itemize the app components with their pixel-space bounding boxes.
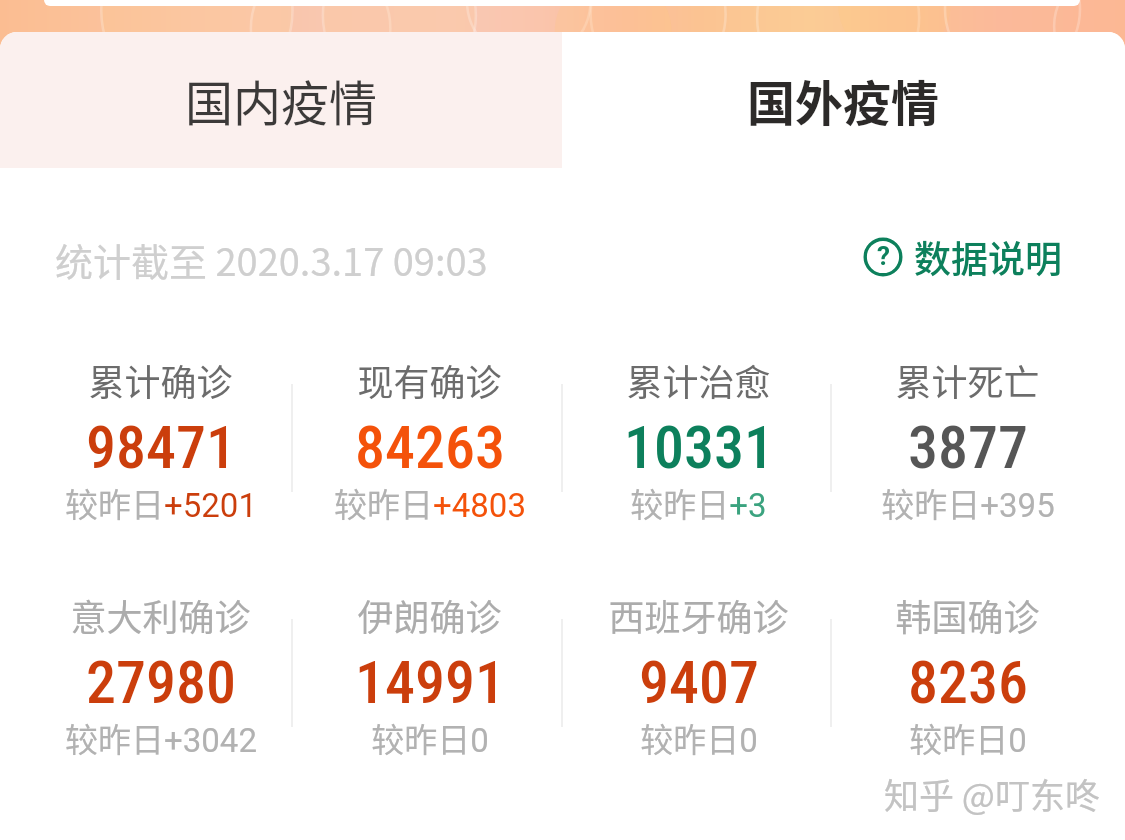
staticText: 8236	[908, 647, 1028, 717]
staticText: 伊朗确诊	[357, 589, 502, 641]
staticText: 较昨日0	[909, 714, 1027, 762]
staticText: ?	[877, 241, 890, 271]
button[interactable]: 韩国确诊	[833, 589, 1102, 765]
staticText: 27980	[86, 647, 236, 717]
staticText: 较昨日+3042	[65, 714, 257, 762]
button[interactable]: 国内疫情	[0, 32, 562, 168]
staticText: 国外疫情	[747, 65, 940, 135]
staticText: 知乎 @叮东咚	[884, 768, 1100, 819]
staticText: 较昨日0	[640, 714, 758, 762]
staticText: 3877	[908, 412, 1028, 482]
button[interactable]: 累计死亡	[833, 354, 1102, 530]
staticText: 意大利确诊	[70, 589, 251, 641]
staticText: 现有确诊	[357, 354, 502, 406]
staticText: 较昨日+3	[630, 479, 767, 527]
button[interactable]: 西班牙确诊	[564, 589, 833, 765]
button[interactable]: 累计治愈	[564, 354, 833, 530]
staticText: 累计确诊	[88, 354, 233, 406]
staticText: 累计治愈	[626, 354, 771, 406]
staticText: 较昨日0	[371, 714, 489, 762]
staticText: 9407	[639, 647, 759, 717]
button[interactable]: 现有确诊	[295, 354, 564, 530]
staticText: 数据说明	[914, 230, 1062, 284]
staticText: 国内疫情	[185, 65, 378, 135]
staticText: 14991	[355, 647, 505, 717]
staticText: 西班牙确诊	[608, 589, 789, 641]
staticText: 较昨日+4803	[334, 479, 526, 527]
staticText: 韩国确诊	[895, 589, 1040, 641]
staticText: 10331	[624, 412, 774, 482]
button[interactable]: 累计确诊	[26, 354, 295, 530]
staticText: 累计死亡	[895, 354, 1040, 406]
staticText: 较昨日+395	[881, 479, 1055, 527]
button[interactable]: 国外疫情	[562, 32, 1125, 168]
button[interactable]: 意大利确诊	[26, 589, 295, 765]
button[interactable]: 伊朗确诊	[295, 589, 564, 765]
staticText: 84263	[355, 412, 505, 482]
staticText: 较昨日+5201	[65, 479, 257, 527]
staticText: 统计截至 2020.3.17 09:03	[55, 232, 488, 287]
button[interactable]: 数据说明	[862, 230, 1062, 284]
staticText: 98471	[86, 412, 236, 482]
